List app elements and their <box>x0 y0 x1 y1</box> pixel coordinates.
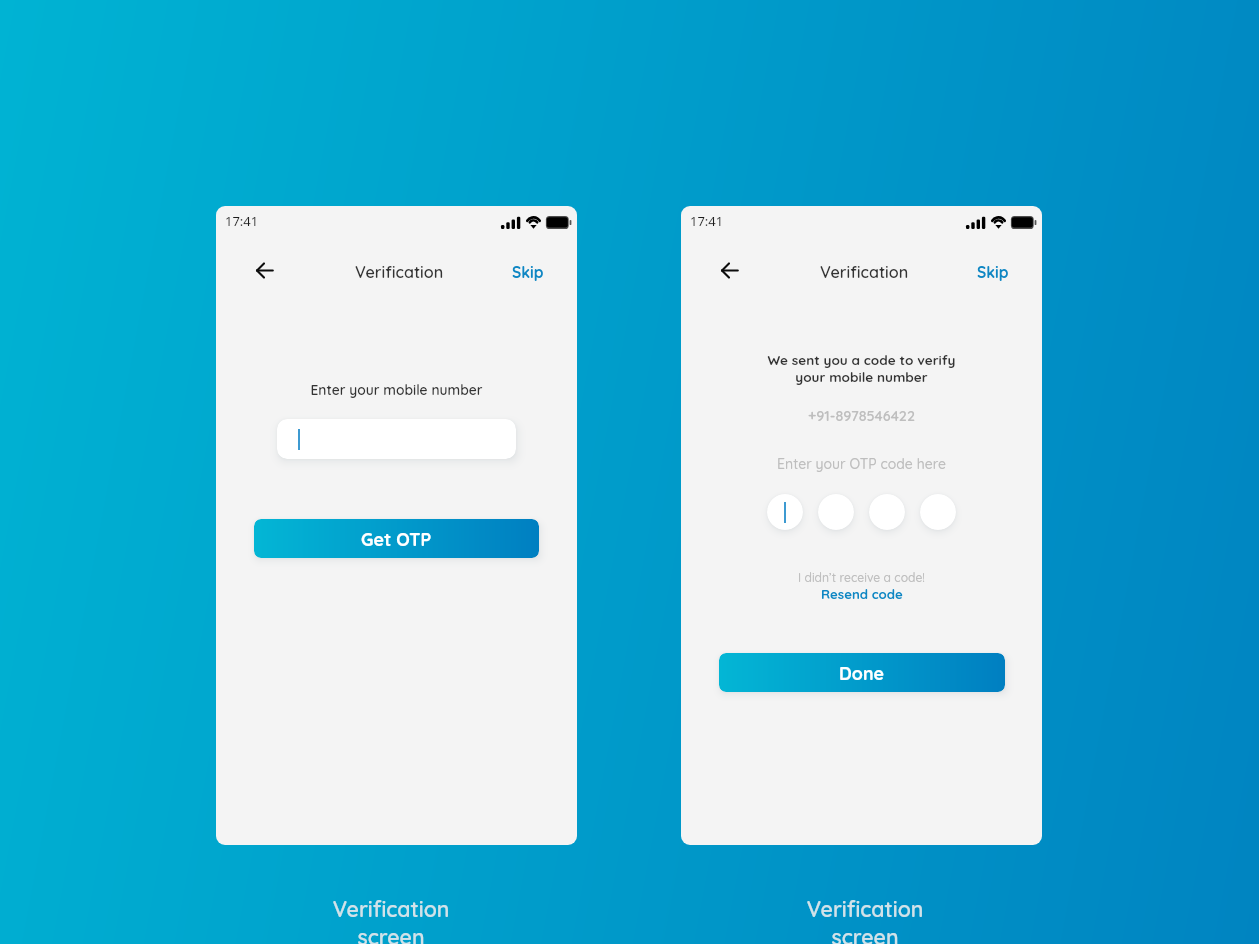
button[interactable]: Skip <box>977 262 1009 281</box>
staticText: Verification <box>355 262 444 282</box>
staticText: 17:41 <box>690 212 724 230</box>
staticText: Get OTP <box>361 528 432 550</box>
button[interactable] <box>869 494 905 530</box>
staticText: Done <box>839 662 885 684</box>
button[interactable] <box>920 494 956 530</box>
button[interactable]: Done <box>719 653 1005 692</box>
staticText: Verification screen <box>765 896 965 944</box>
staticText: Skip <box>977 262 1009 281</box>
staticText: Verification screen <box>291 896 491 944</box>
button[interactable]: Back <box>249 255 279 285</box>
staticText: +91-8978546422 <box>681 407 1042 425</box>
button[interactable] <box>767 494 803 530</box>
button[interactable]: Back <box>714 255 744 285</box>
staticText: Enter your OTP code here <box>681 455 1042 472</box>
staticText: 17:41 <box>225 212 259 230</box>
staticText: Resend code <box>821 586 903 602</box>
staticText: We sent you a code to verify your mobile… <box>681 351 1042 386</box>
button[interactable]: Get OTP <box>254 519 539 558</box>
button[interactable]: Resend code <box>821 586 903 602</box>
staticText: Enter your mobile number <box>216 381 577 398</box>
button[interactable]: Skip <box>512 262 544 281</box>
staticText: Skip <box>512 262 544 281</box>
other: Signal, Wi-Fi and battery status <box>501 216 569 229</box>
button[interactable] <box>277 419 516 459</box>
button[interactable] <box>818 494 854 530</box>
staticText: I didn’t receive a code! <box>681 570 1042 585</box>
staticText: Verification <box>820 262 909 282</box>
other: Signal, Wi-Fi and battery status <box>966 216 1034 229</box>
